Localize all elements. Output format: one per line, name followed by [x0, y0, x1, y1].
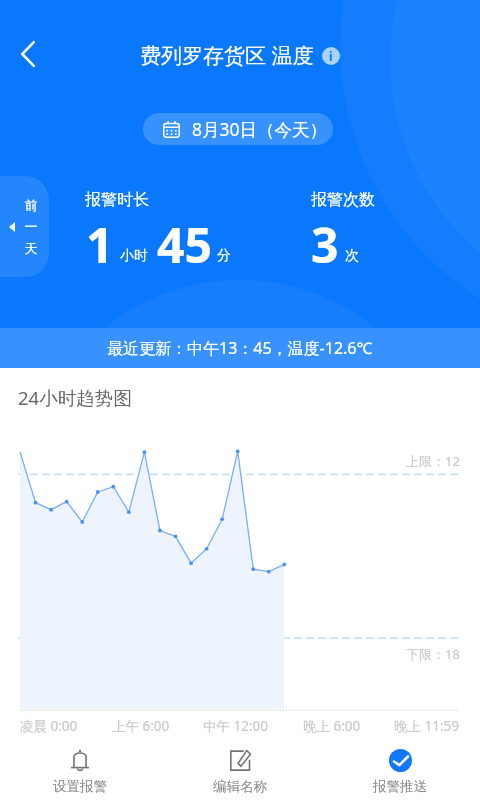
staticText: 晚上 11:59 — [394, 717, 460, 735]
staticText: 上限：12 — [406, 452, 460, 470]
staticText: 凌晨 0:00 — [20, 717, 78, 735]
staticText: 45 — [157, 212, 212, 277]
staticText: 上午 6:00 — [112, 717, 170, 735]
button[interactable]: Info — [322, 47, 340, 65]
staticText: 1 — [86, 212, 114, 277]
button[interactable]: 设置报警 — [0, 736, 160, 800]
staticText: 设置报警 — [53, 778, 107, 795]
staticText: 最近更新：中午13：45，温度-12.6℃ — [107, 337, 373, 359]
staticText: 编辑名称 — [213, 778, 267, 795]
button[interactable]: Back — [5, 31, 50, 76]
button[interactable]: 编辑名称 — [160, 736, 320, 800]
staticText: 8月30日（今天） — [192, 117, 328, 141]
staticText: 次 — [345, 247, 359, 265]
staticText: 报警时长 — [85, 190, 149, 210]
staticText: 费列罗存货区 温度 — [140, 41, 314, 70]
staticText: 24小时趋势图 — [18, 385, 132, 410]
button[interactable]: 报警推送 — [320, 736, 480, 800]
staticText: 3 — [311, 212, 339, 277]
staticText: 下限：18 — [406, 645, 460, 663]
staticText: 小时 — [120, 247, 148, 265]
staticText: 分 — [217, 247, 231, 265]
staticText: 报警次数 — [311, 190, 375, 210]
staticText: i — [329, 48, 333, 64]
staticText: 前一天 — [24, 197, 38, 257]
button[interactable]: 前一天 — [0, 176, 49, 277]
staticText: 报警推送 — [373, 778, 427, 795]
staticText: 中午 12:00 — [203, 717, 269, 735]
button[interactable]: 8月30日（今天） — [143, 113, 333, 145]
staticText: 晚上 6:00 — [303, 717, 361, 735]
